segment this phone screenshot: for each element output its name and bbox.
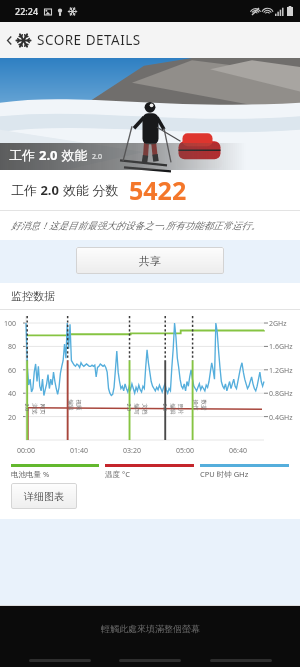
staticText: 工作 bbox=[9, 146, 39, 164]
staticText: 电池电量 % bbox=[11, 469, 50, 479]
staticText: 工作 bbox=[11, 182, 37, 198]
staticText: 共享 bbox=[139, 254, 161, 268]
staticText: 5422 bbox=[129, 173, 187, 207]
staticText: 100 bbox=[4, 319, 17, 329]
staticText: 01:40 bbox=[70, 446, 88, 456]
button[interactable]: 详细图表 bbox=[11, 483, 77, 509]
staticText: SCORE DETAILS bbox=[37, 31, 141, 49]
button[interactable]: 共享 bbox=[76, 247, 224, 274]
staticText: 0.8GHz bbox=[269, 389, 293, 399]
staticText: 03:20 bbox=[123, 446, 141, 456]
staticText: CPU 时钟 GHz bbox=[200, 469, 249, 479]
staticText: 监控数据 bbox=[11, 289, 55, 303]
staticText: 照片编辑 2.0 bbox=[161, 403, 183, 414]
staticText: 数据操作 bbox=[192, 399, 206, 410]
staticText: 80 bbox=[8, 342, 17, 352]
staticText: 2.0 bbox=[37, 181, 63, 199]
button[interactable]: Back bbox=[0, 22, 149, 58]
staticText: 详细图表 bbox=[24, 490, 64, 503]
staticText: 网页浏览 2.0 bbox=[23, 403, 45, 414]
staticText: 06:40 bbox=[229, 446, 247, 456]
staticText: 温度 °C bbox=[105, 469, 130, 479]
staticText: 00:00 bbox=[17, 446, 35, 456]
staticText: 20 bbox=[8, 413, 17, 423]
staticText: 效能 分数 bbox=[63, 181, 119, 199]
staticText: 2.0 bbox=[92, 152, 102, 162]
staticText: 40 bbox=[8, 389, 17, 399]
staticText: 22:24 bbox=[15, 5, 39, 17]
staticText: 效能 bbox=[58, 146, 88, 164]
staticText: 视频编辑 bbox=[67, 399, 81, 410]
staticText: 05:00 bbox=[176, 446, 194, 456]
staticText: 1.6GHz bbox=[269, 342, 293, 352]
staticText: 60 bbox=[8, 366, 17, 376]
other: Back bbox=[4, 35, 15, 46]
staticText: 2.0 bbox=[39, 146, 58, 164]
staticText: 文档编写 2.0 bbox=[125, 403, 147, 414]
staticText: 2GHz bbox=[269, 319, 287, 329]
staticText: 0.4GHz bbox=[269, 413, 293, 423]
staticText: 輕觸此處來填滿整個螢幕 bbox=[101, 623, 200, 634]
staticText: 1.2GHz bbox=[269, 366, 293, 376]
staticText: 好消息！这是目前最强大的设备之一,所有功能都正常运行。 bbox=[11, 219, 261, 232]
